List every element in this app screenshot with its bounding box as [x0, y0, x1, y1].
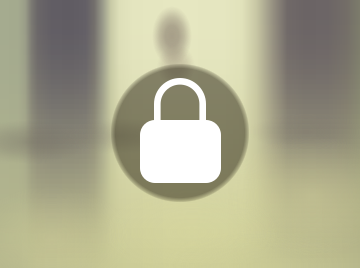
button[interactable]: Locked [0, 0, 360, 268]
